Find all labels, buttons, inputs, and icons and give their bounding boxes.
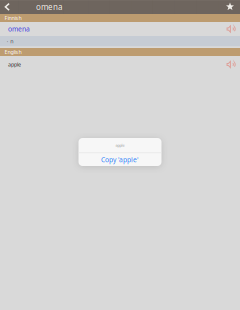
- staticText: omena: [8, 25, 30, 33]
- staticText: apple: [115, 143, 124, 148]
- button[interactable]: Copy 'apple': [78, 153, 161, 166]
- staticText: Finnish: [4, 14, 21, 22]
- staticText: ·: [7, 38, 8, 45]
- button[interactable]: apple: [0, 56, 240, 73]
- button[interactable]: Back: [0, 0, 14, 14]
- staticText: n: [10, 38, 13, 45]
- button[interactable]: omena: [0, 22, 240, 36]
- staticText: English: [4, 48, 21, 56]
- staticText: Copy 'apple': [101, 155, 139, 164]
- staticText: apple: [8, 61, 21, 68]
- button[interactable]: Add to favourites: [226, 0, 240, 14]
- staticText: omena: [36, 2, 62, 12]
